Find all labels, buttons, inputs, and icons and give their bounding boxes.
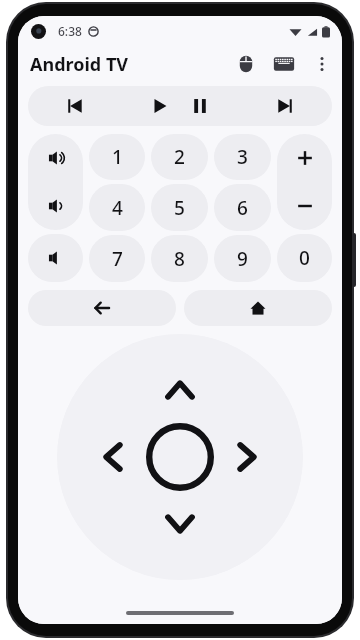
- button[interactable]: Channel down: [277, 182, 332, 230]
- staticText: 0: [299, 245, 310, 271]
- staticText: 5: [174, 195, 185, 221]
- button[interactable]: Keyboard: [272, 52, 296, 76]
- staticText: 3: [237, 144, 248, 170]
- staticText: 1: [112, 144, 123, 170]
- button[interactable]: More options: [310, 52, 334, 76]
- button[interactable]: Channel up: [277, 134, 332, 182]
- button[interactable]: Down: [154, 498, 206, 550]
- button[interactable]: 4: [89, 184, 145, 231]
- button[interactable]: Right: [221, 431, 273, 483]
- button[interactable]: Next: [240, 86, 332, 126]
- button[interactable]: 0: [277, 234, 332, 282]
- button[interactable]: 6: [214, 184, 271, 231]
- staticText: 6:38: [58, 23, 82, 39]
- staticText: 8: [174, 246, 185, 272]
- button[interactable]: Back: [28, 290, 176, 326]
- button[interactable]: Up: [154, 364, 206, 416]
- button[interactable]: Previous: [28, 86, 120, 126]
- button[interactable]: Volume up: [28, 134, 83, 182]
- staticText: 2: [174, 144, 185, 170]
- staticText: 4: [112, 195, 123, 221]
- button[interactable]: 3: [214, 134, 271, 180]
- button[interactable]: 5: [151, 184, 208, 231]
- button[interactable]: 1: [89, 134, 145, 180]
- button[interactable]: Touchpad: [234, 52, 258, 76]
- button[interactable]: Pause: [180, 86, 220, 126]
- staticText: 9: [237, 246, 248, 272]
- button[interactable]: Left: [87, 431, 139, 483]
- button[interactable]: Volume down: [28, 182, 83, 230]
- button[interactable]: 9: [214, 235, 271, 282]
- button[interactable]: 7: [89, 235, 145, 282]
- staticText: 7: [112, 246, 123, 272]
- button[interactable]: Select: [143, 420, 217, 494]
- button[interactable]: 8: [151, 235, 208, 282]
- staticText: Android TV: [30, 52, 128, 77]
- button[interactable]: Home: [184, 290, 332, 326]
- button[interactable]: Mute: [28, 234, 83, 282]
- button[interactable]: 2: [151, 134, 208, 180]
- button[interactable]: Play: [140, 86, 180, 126]
- staticText: 6: [237, 195, 248, 221]
